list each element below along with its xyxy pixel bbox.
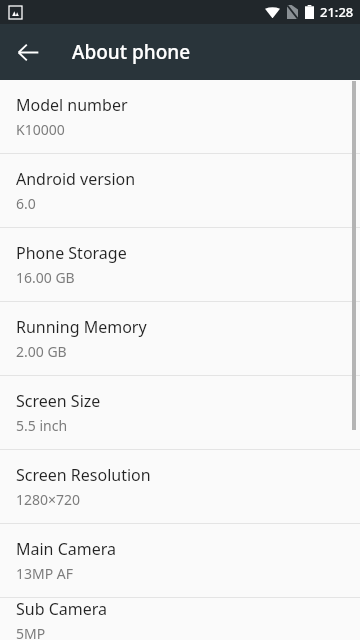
- staticText: Phone Storage: [16, 242, 127, 264]
- staticText: Running Memory: [16, 316, 147, 338]
- staticText: Screen Resolution: [16, 464, 151, 486]
- staticText: Sub Camera: [16, 598, 108, 620]
- staticText: Android version: [16, 168, 136, 190]
- button[interactable]: Phone Storage: [0, 228, 360, 301]
- staticText: Main Camera: [16, 538, 117, 560]
- staticText: 16.00 GB: [16, 268, 75, 287]
- staticText: 1280×720: [16, 490, 81, 509]
- button[interactable]: Running Memory: [0, 302, 360, 375]
- staticText: 6.0: [16, 194, 36, 213]
- button[interactable]: Sub Camera: [0, 598, 360, 640]
- button[interactable]: Screen Size: [0, 376, 360, 449]
- button[interactable]: Main Camera: [0, 524, 360, 597]
- button[interactable]: Back: [4, 28, 52, 76]
- staticText: Screen Size: [16, 390, 101, 412]
- staticText: 5.5 inch: [16, 416, 68, 435]
- staticText: About phone: [72, 39, 191, 65]
- staticText: K10000: [16, 120, 65, 139]
- button[interactable]: Model number: [0, 80, 360, 153]
- staticText: 2.00 GB: [16, 342, 67, 361]
- staticText: Model number: [16, 94, 128, 116]
- staticText: 21:28: [320, 3, 354, 21]
- button[interactable]: Screen Resolution: [0, 450, 360, 523]
- button[interactable]: Android version: [0, 154, 360, 227]
- staticText: 5MP: [16, 624, 46, 640]
- staticText: 13MP AF: [16, 564, 74, 583]
